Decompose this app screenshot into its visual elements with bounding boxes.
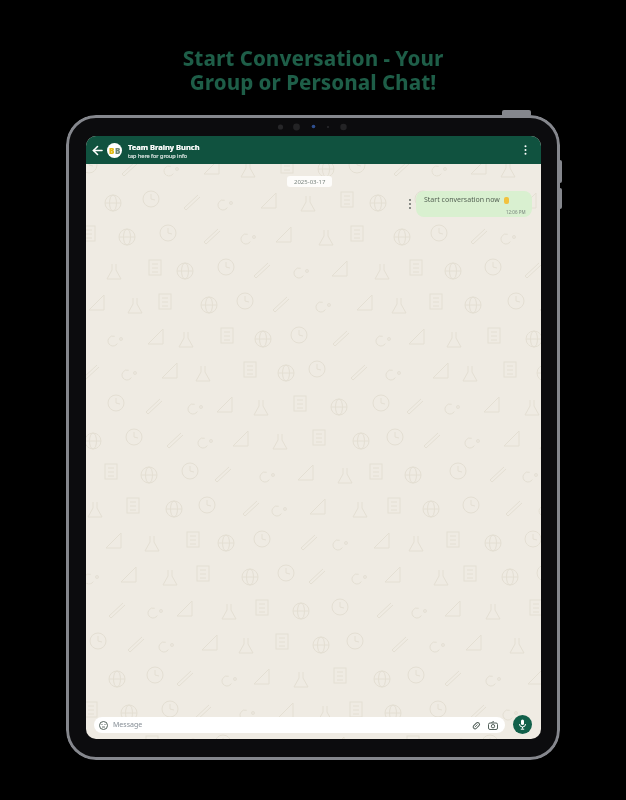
button[interactable]	[520, 141, 531, 159]
staticText: Message	[113, 720, 143, 730]
staticText: Start Conversation - Your Group or Perso…	[0, 44, 626, 96]
button[interactable]: Message	[94, 717, 505, 733]
staticText: tap here for group info	[128, 152, 188, 159]
staticText: B	[115, 145, 121, 156]
button[interactable]	[513, 715, 532, 734]
staticText: 2025-03-17	[294, 178, 326, 186]
staticText: B	[109, 145, 115, 156]
button[interactable]: Start conversation now	[416, 191, 532, 217]
button[interactable]: B	[86, 136, 541, 164]
staticText: Start conversation now	[424, 195, 500, 205]
staticText: 12:06 PM	[506, 209, 526, 215]
staticText: Team Brainy Bunch	[128, 142, 200, 152]
